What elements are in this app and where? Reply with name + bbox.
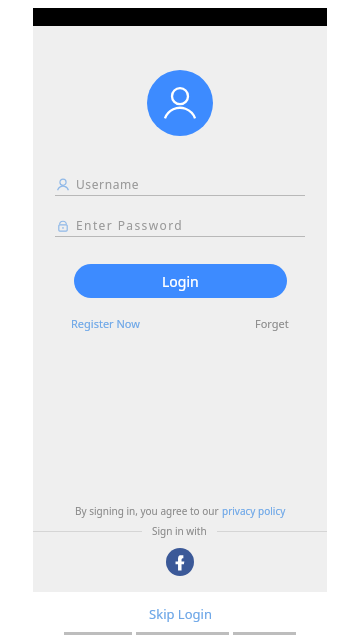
button[interactable]: Sign in with Facebook [166,548,194,576]
button[interactable]: Enter Password [55,217,305,237]
staticText: Username [76,176,140,192]
staticText: Sign in with [152,524,207,538]
staticText: Forget [255,316,289,331]
staticText: Skip Login [149,605,212,623]
button[interactable]: Profile avatar [147,70,213,136]
staticText: Enter Password [76,217,184,233]
staticText: Login [162,272,199,291]
staticText: By signing in, you agree to our [75,504,222,518]
staticText: privacy policy [222,504,286,518]
button[interactable]: Register Now [71,316,140,331]
button[interactable]: Login [74,264,287,298]
button[interactable]: Forget [255,316,289,331]
button[interactable]: Skip Login [0,603,360,625]
button[interactable]: privacy policy [222,504,286,518]
button[interactable]: Username [55,176,305,196]
staticText: Register Now [71,316,140,331]
